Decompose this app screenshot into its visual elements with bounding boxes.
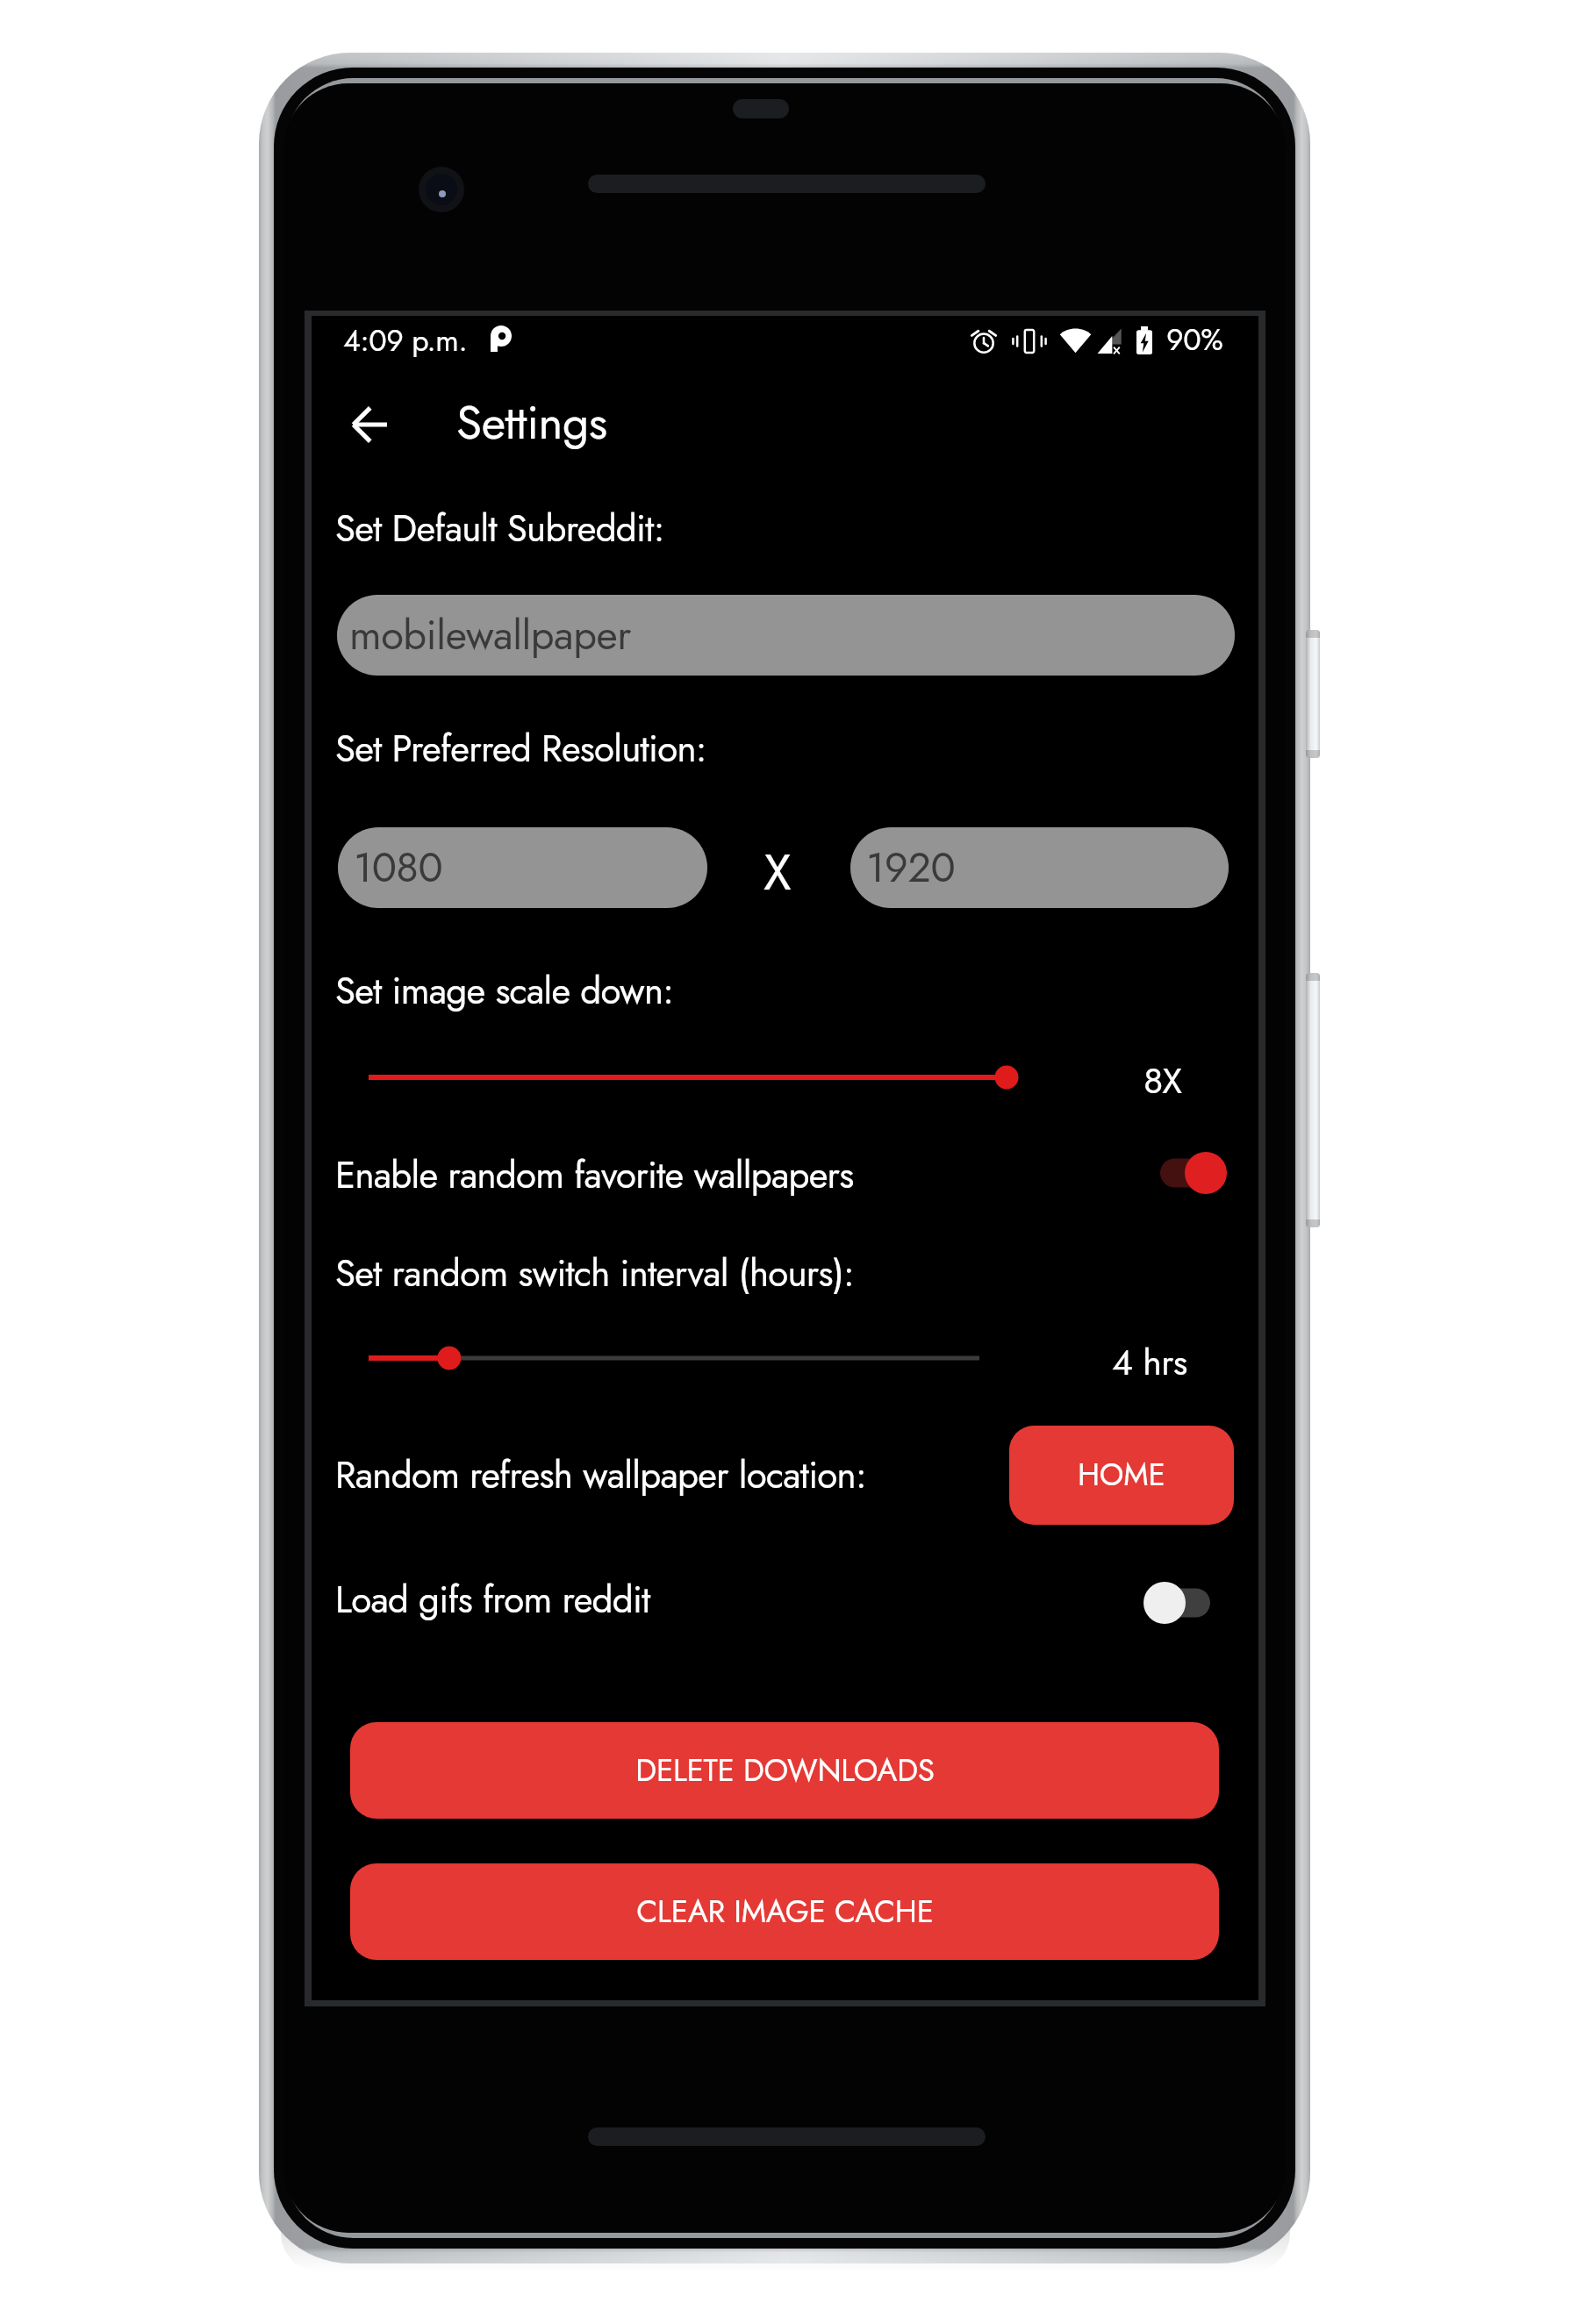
staticText: HOME xyxy=(1078,1453,1165,1498)
staticText: X xyxy=(763,836,792,908)
button[interactable]: 1080 xyxy=(338,827,707,908)
staticText: Settings xyxy=(456,389,607,456)
staticText: 8X xyxy=(1143,1055,1182,1106)
staticText: 1080 xyxy=(354,838,443,897)
staticText: Set Preferred Resolution: xyxy=(335,722,706,776)
staticText: 1920 xyxy=(866,838,956,897)
button[interactable]: CLEAR IMAGE CACHE xyxy=(350,1863,1219,1960)
button[interactable]: HOME xyxy=(1009,1426,1234,1525)
button[interactable]: mobilewallpaper xyxy=(337,595,1235,676)
staticText: Load gifs from reddit xyxy=(335,1573,650,1627)
staticText: mobilewallpaper xyxy=(349,605,631,665)
staticText: Set random switch interval (hours): xyxy=(335,1247,855,1300)
button[interactable]: Back xyxy=(329,384,410,465)
staticText: Set Default Subreddit: xyxy=(335,502,664,555)
button[interactable]: Set random switch interval xyxy=(355,1334,993,1383)
button[interactable]: Load gifs from reddit xyxy=(1142,1578,1228,1627)
staticText: 90% xyxy=(1166,318,1223,361)
button[interactable]: DELETE DOWNLOADS xyxy=(350,1722,1219,1819)
staticText: DELETE DOWNLOADS xyxy=(635,1748,935,1793)
staticText: CLEAR IMAGE CACHE xyxy=(636,1890,934,1934)
staticText: Enable random favorite wallpapers xyxy=(335,1148,854,1202)
staticText: 4 hrs xyxy=(1112,1336,1187,1388)
staticText: 4:09 p.m. xyxy=(343,319,468,360)
button[interactable]: Enable random favorite wallpapers xyxy=(1143,1148,1229,1198)
button[interactable]: Set image scale down xyxy=(355,1053,1021,1102)
staticText: Random refresh wallpaper location: xyxy=(335,1448,866,1502)
staticText: Set image scale down: xyxy=(335,964,674,1018)
button[interactable]: 1920 xyxy=(850,827,1229,908)
